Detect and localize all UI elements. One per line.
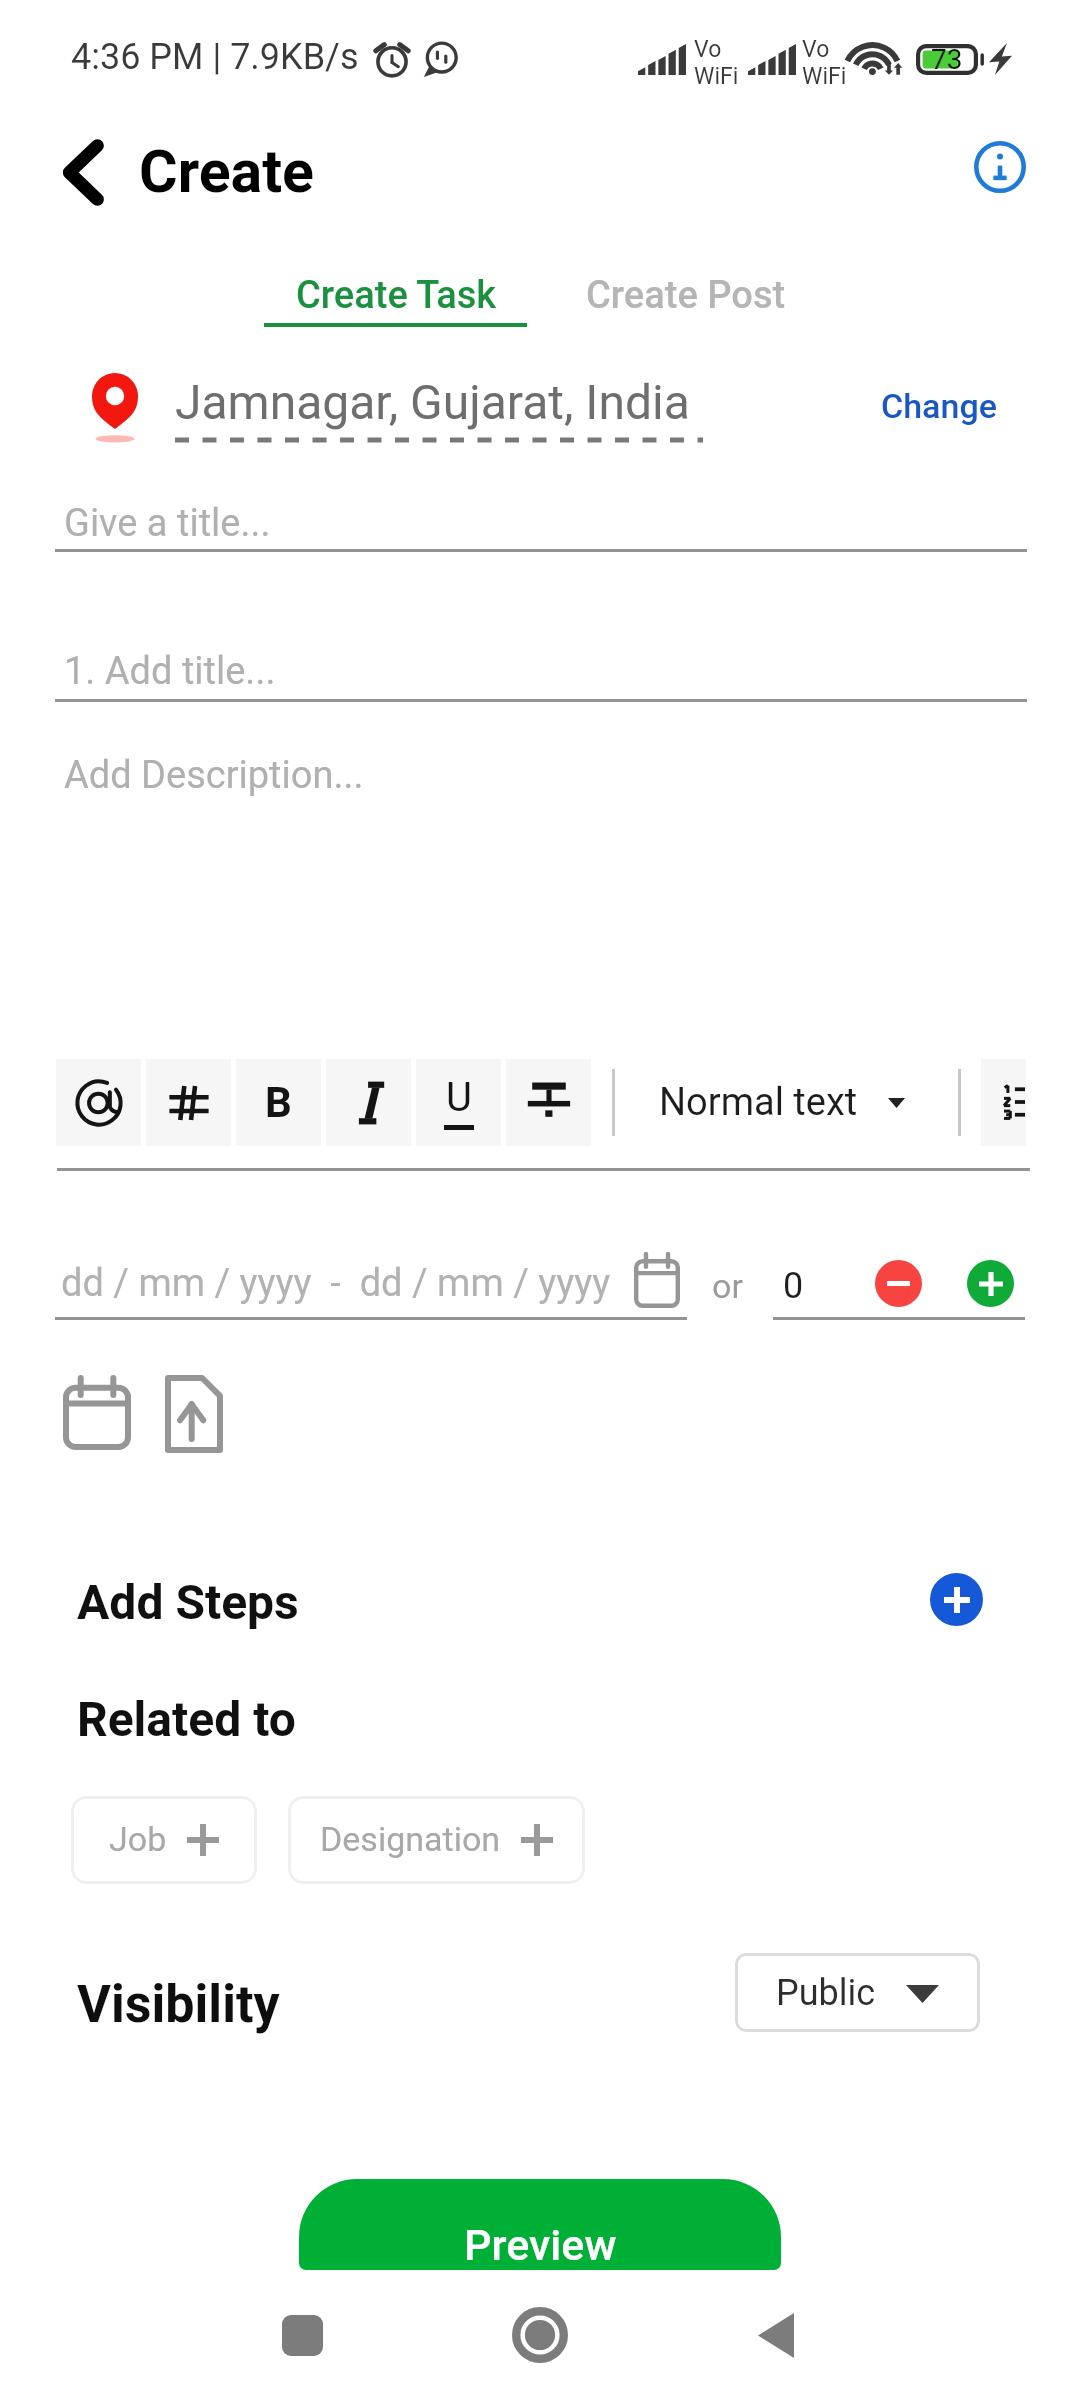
button[interactable]: Information: [940, 107, 1060, 227]
button[interactable]: Decrease: [875, 1260, 922, 1307]
button[interactable]: Pick date: [55, 1370, 139, 1462]
button[interactable]: Job: [71, 1796, 257, 1884]
staticText: dd / mm / yyyy - dd / mm / yyyy: [61, 1261, 611, 1306]
button[interactable]: Mention: [56, 1059, 141, 1146]
button[interactable]: Public: [735, 1953, 980, 2032]
staticText: Jamnagar, Gujarat, India: [175, 374, 690, 430]
button[interactable]: Preview: [299, 2179, 781, 2270]
staticText: Change: [881, 386, 997, 426]
button[interactable]: Designation: [288, 1796, 585, 1884]
staticText: Give a title...: [64, 501, 271, 546]
staticText: 1. Add title...: [64, 649, 276, 694]
button[interactable]: Home: [490, 2285, 590, 2385]
staticText: 73: [931, 43, 963, 76]
button[interactable]: Strikethrough: [506, 1059, 591, 1146]
staticText: 0: [783, 1265, 804, 1307]
button[interactable]: Create: [0, 118, 338, 226]
staticText: WiFi: [802, 63, 847, 90]
button[interactable]: Numbered list: [981, 1059, 1026, 1146]
staticText: Vo: [694, 36, 722, 63]
staticText: WiFi: [694, 63, 739, 90]
staticText: Create Task: [296, 273, 497, 318]
staticText: Preview: [464, 2220, 617, 2270]
staticText: B: [265, 1078, 292, 1127]
staticText: Job: [109, 1819, 167, 1859]
button[interactable]: Hashtag: [146, 1059, 231, 1146]
button[interactable]: Create Task: [265, 258, 527, 330]
button[interactable]: Create Post: [555, 258, 817, 324]
staticText: or: [712, 1266, 743, 1306]
staticText: Create: [139, 137, 314, 206]
staticText: U: [446, 1074, 472, 1121]
staticText: Related to: [77, 1691, 296, 1747]
staticText: Visibility: [77, 1974, 280, 2035]
staticText: Vo: [802, 36, 830, 63]
staticText: Add Steps: [77, 1574, 299, 1630]
staticText: Create Post: [586, 273, 786, 318]
staticText: Public: [776, 1972, 876, 2014]
button[interactable]: Add step: [930, 1573, 983, 1626]
button[interactable]: Back: [726, 2285, 826, 2385]
button[interactable]: Increase: [967, 1260, 1014, 1307]
button[interactable]: Upload file: [158, 1368, 232, 1460]
button[interactable]: B: [236, 1059, 321, 1146]
button[interactable]: Change: [864, 368, 1014, 444]
staticText: Designation: [320, 1819, 501, 1859]
staticText: 4:36 PM | 7.9KB/s: [71, 36, 359, 78]
button[interactable]: Italic: [326, 1059, 411, 1146]
staticText: Add Description...: [64, 753, 364, 798]
button[interactable]: U: [416, 1059, 501, 1146]
button[interactable]: Recents: [252, 2285, 352, 2385]
staticText: Normal text: [659, 1080, 858, 1125]
button[interactable]: Normal text: [640, 1063, 920, 1143]
